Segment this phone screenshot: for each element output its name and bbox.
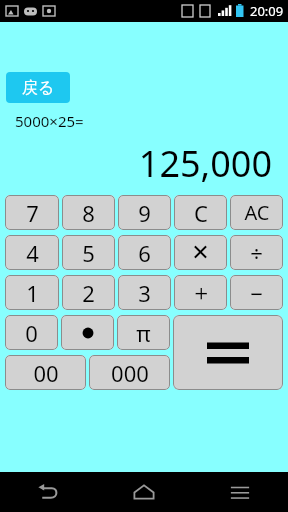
staticText: ÷ [250, 238, 263, 268]
staticText: π [136, 318, 151, 348]
staticText: 9 [138, 198, 151, 228]
staticText: 125,000 [0, 139, 272, 188]
button[interactable]: Back [0, 472, 96, 512]
button[interactable]: Recent apps [192, 472, 288, 512]
staticText: 20:09 [250, 2, 284, 20]
button[interactable]: 2 [62, 275, 115, 310]
staticText: 5000×25= [15, 111, 84, 131]
button[interactable]: Equals [173, 315, 283, 390]
button[interactable]: 戻る [6, 72, 70, 103]
button[interactable]: 6 [118, 235, 171, 270]
staticText: 3 [138, 278, 151, 308]
button[interactable]: 9 [118, 195, 171, 230]
button[interactable]: 8 [62, 195, 115, 230]
button[interactable]: Decimal point [61, 315, 114, 350]
staticText: 6 [138, 238, 151, 268]
staticText: ＋ [190, 279, 212, 307]
button[interactable]: 00 [5, 355, 86, 390]
button[interactable]: ÷ [230, 235, 283, 270]
staticText: 5 [82, 238, 95, 268]
button[interactable]: 5 [62, 235, 115, 270]
button[interactable]: − [230, 275, 283, 310]
button[interactable]: AC [230, 195, 283, 230]
staticText: 1 [26, 278, 39, 308]
button[interactable]: ✕ [174, 235, 227, 270]
staticText: 00 [33, 358, 59, 388]
button[interactable]: ＋ [174, 275, 227, 310]
staticText: − [250, 278, 263, 308]
button[interactable]: C [174, 195, 227, 230]
staticText: 000 [111, 358, 149, 388]
button[interactable]: 0 [5, 315, 58, 350]
staticText: 4 [26, 238, 39, 268]
button[interactable]: 1 [5, 275, 59, 310]
staticText: 7 [26, 198, 39, 228]
staticText: 0 [25, 318, 38, 348]
staticText: 戻る [22, 78, 55, 98]
button[interactable]: π [117, 315, 170, 350]
button[interactable]: Home [96, 472, 192, 512]
staticText: C [194, 198, 208, 228]
button[interactable]: 4 [5, 235, 59, 270]
staticText: 8 [82, 198, 95, 228]
button[interactable]: 7 [5, 195, 59, 230]
button[interactable]: 3 [118, 275, 171, 310]
button[interactable]: 000 [89, 355, 170, 390]
staticText: 2 [82, 278, 95, 308]
staticText: ✕ [191, 240, 210, 266]
staticText: AC [244, 199, 270, 226]
